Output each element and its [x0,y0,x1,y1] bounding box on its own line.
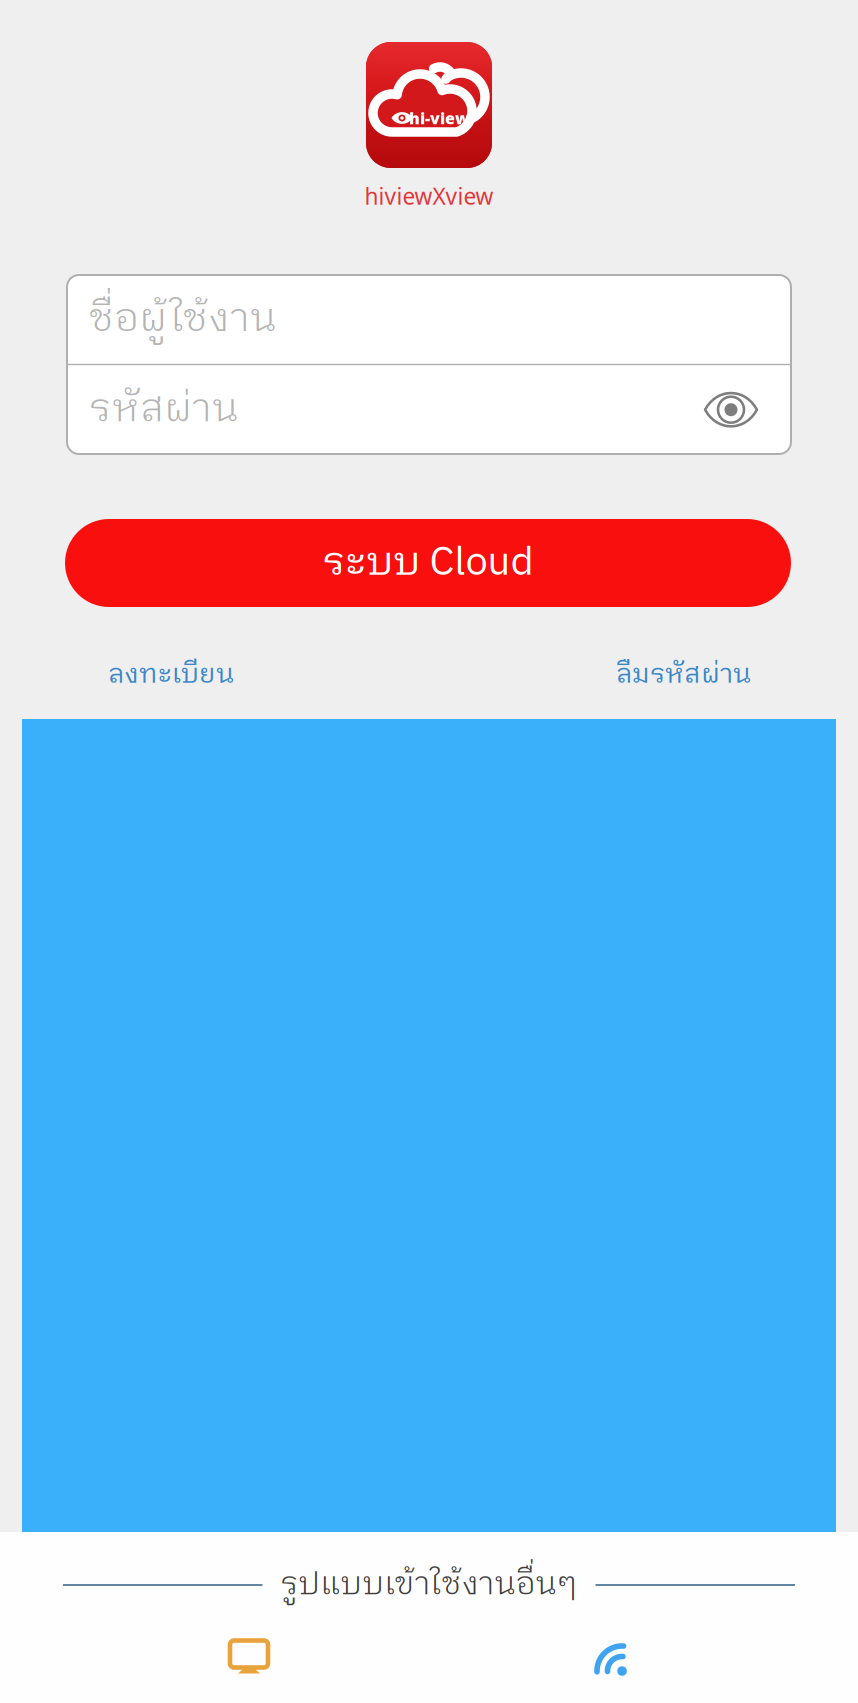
staticText: ลงทะเบียน [108,653,234,697]
button[interactable]: ลืมรหัสผ่าน [616,645,751,705]
button[interactable]: Show password [687,366,775,454]
staticText: รหัสผ่าน [89,377,239,443]
staticText: ชื่อผู้ใช้งาน [89,286,277,352]
button[interactable]: Sign in over Wi-Fi [563,1628,659,1686]
button[interactable]: ระบบ Cloud [65,519,791,607]
button[interactable]: Sign in on local device [201,1628,297,1686]
staticText: ระบบ Cloud [322,530,533,596]
staticText: hiviewXview [364,181,493,211]
staticText: ลืมรหัสผ่าน [616,653,751,697]
staticText: รูปแบบเข้าใช้งานอื่นๆ [280,1559,577,1611]
button[interactable]: ลงทะเบียน [108,645,234,705]
staticText: hi-view [409,107,470,129]
